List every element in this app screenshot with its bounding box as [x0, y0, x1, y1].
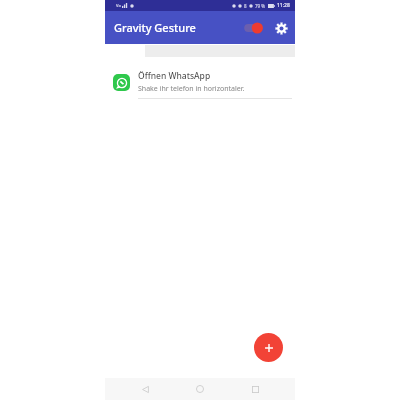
staticText: 79 % — [255, 3, 266, 9]
staticText: Gravity Gesture — [114, 20, 196, 35]
button[interactable]: Back — [130, 378, 160, 400]
button[interactable]: Recent apps — [240, 378, 270, 400]
button[interactable]: Öffnen WhatsApp — [105, 66, 295, 99]
button[interactable]: Add gesture — [254, 333, 283, 362]
button[interactable]: Enable gravity gestures — [242, 20, 264, 36]
staticText: 11:28 — [277, 2, 290, 9]
staticText: Öffnen WhatsApp — [138, 70, 211, 82]
staticText: Vo — [116, 3, 121, 8]
button[interactable]: Settings — [273, 20, 289, 36]
button[interactable]: Home — [185, 378, 215, 400]
staticText: 8 — [244, 3, 247, 9]
staticText: Shake ihr telefon in horizontaler. — [138, 84, 245, 94]
